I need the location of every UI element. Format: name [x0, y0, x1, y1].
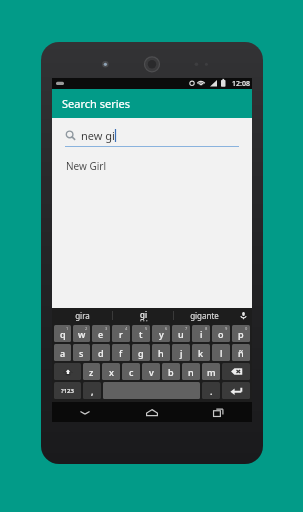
button[interactable]: p — [232, 325, 250, 342]
button[interactable]: Backspace — [222, 363, 250, 380]
staticText: i — [200, 328, 203, 340]
button[interactable]: e — [92, 325, 110, 342]
button[interactable]: n — [182, 363, 200, 380]
button[interactable]: q — [54, 325, 71, 342]
button[interactable]: g — [132, 344, 150, 361]
button[interactable]: gigante — [174, 308, 234, 323]
staticText: g — [138, 347, 144, 359]
button[interactable]: w — [73, 325, 90, 342]
staticText: q — [60, 328, 66, 340]
staticText: x — [109, 366, 114, 378]
button[interactable]: x — [102, 363, 120, 380]
staticText: 9 — [225, 326, 228, 331]
button[interactable]: i — [192, 325, 210, 342]
staticText: 7 — [185, 326, 188, 331]
button[interactable]: m — [202, 363, 220, 380]
staticText: ñ — [238, 347, 244, 359]
button[interactable]: t — [132, 325, 150, 342]
staticText: ?123 — [61, 387, 74, 395]
button[interactable]: v — [142, 363, 160, 380]
button[interactable]: New Girl — [52, 156, 252, 176]
staticText: b — [168, 366, 174, 378]
button[interactable]: . — [202, 382, 220, 399]
staticText: 4 — [125, 326, 128, 331]
staticText: h — [158, 347, 164, 359]
staticText: l — [220, 347, 223, 359]
staticText: 8 — [205, 326, 208, 331]
button[interactable]: z — [83, 363, 100, 380]
staticText: k — [198, 347, 204, 359]
staticText: o — [218, 328, 224, 340]
button[interactable]: new gi — [65, 128, 239, 143]
staticText: s — [79, 347, 84, 359]
staticText: y — [159, 328, 164, 340]
button[interactable]: u — [172, 325, 190, 342]
staticText: new gi — [81, 128, 115, 143]
staticText: gigante — [190, 310, 219, 321]
button[interactable]: r — [112, 325, 130, 342]
staticText: 12:08 — [232, 79, 250, 89]
staticText: gi — [140, 309, 147, 320]
staticText: p — [238, 328, 244, 340]
staticText: 5 — [145, 326, 148, 331]
button[interactable]: Hide keyboard — [52, 402, 118, 422]
button[interactable]: s — [73, 344, 90, 361]
staticText: New Girl — [66, 159, 107, 173]
staticText: z — [89, 366, 94, 378]
button[interactable]: Enter — [222, 382, 250, 399]
staticText: d — [98, 347, 104, 359]
staticText: 1 — [66, 326, 69, 331]
button[interactable]: Home — [118, 402, 185, 422]
button[interactable]: k — [192, 344, 210, 361]
staticText: 2 — [85, 326, 88, 331]
staticText: c — [129, 366, 134, 378]
staticText: m — [207, 366, 216, 378]
button[interactable]: h — [152, 344, 170, 361]
staticText: f — [119, 347, 123, 359]
button[interactable]: o — [212, 325, 230, 342]
staticText: , — [91, 385, 94, 397]
staticText: r — [119, 328, 123, 340]
staticText: Search series — [62, 96, 131, 111]
button[interactable]: Voice input — [234, 308, 252, 323]
button[interactable]: ?123 — [54, 382, 81, 399]
button[interactable]: c — [122, 363, 140, 380]
staticText: 3 — [105, 326, 108, 331]
staticText: e — [98, 328, 104, 340]
staticText: v — [149, 366, 154, 378]
button[interactable]: , — [83, 382, 101, 399]
button[interactable]: Search series — [52, 89, 252, 118]
staticText: j — [180, 347, 183, 359]
button[interactable]: l — [212, 344, 230, 361]
staticText: 6 — [165, 326, 168, 331]
button[interactable]: ñ — [232, 344, 250, 361]
staticText: t — [139, 328, 143, 340]
button[interactable]: f — [112, 344, 130, 361]
button[interactable]: Shift — [54, 363, 81, 380]
staticText: w — [78, 328, 86, 340]
staticText: . — [210, 385, 213, 397]
button[interactable]: gi — [113, 308, 173, 323]
staticText: u — [178, 328, 184, 340]
button[interactable]: gira — [52, 308, 112, 323]
button[interactable]: j — [172, 344, 190, 361]
staticText: n — [188, 366, 194, 378]
staticText: gira — [75, 310, 90, 321]
button[interactable]: d — [92, 344, 110, 361]
button[interactable]: b — [162, 363, 180, 380]
button[interactable]: Recent apps — [185, 402, 252, 422]
button[interactable]: y — [152, 325, 170, 342]
button[interactable]: a — [54, 344, 71, 361]
staticText: 0 — [245, 326, 248, 331]
staticText: a — [60, 347, 66, 359]
